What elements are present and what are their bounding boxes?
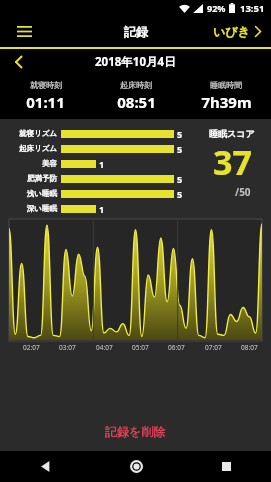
staticText: 01:11 xyxy=(26,92,65,112)
staticText: 92% xyxy=(207,2,226,14)
staticText: 肥満予防 xyxy=(27,174,57,183)
button[interactable]: Previous day xyxy=(6,50,30,74)
staticText: 07:07 xyxy=(205,343,222,352)
staticText: 深い睡眠 xyxy=(26,204,57,213)
staticText: 05:07 xyxy=(132,343,149,352)
staticText: 08:51 xyxy=(117,92,156,112)
staticText: 美容 xyxy=(42,159,57,168)
staticText: 睡眠スコア xyxy=(209,128,255,139)
staticText: 06:07 xyxy=(168,343,185,352)
staticText: 08:07 xyxy=(241,343,258,352)
staticText: 浅い睡眠 xyxy=(26,189,57,198)
staticText: 就寝時刻 xyxy=(30,80,62,90)
staticText: /50 xyxy=(235,185,251,199)
staticText: 睡眠時間 xyxy=(210,80,242,90)
staticText: 13:51 xyxy=(240,2,265,15)
button[interactable]: 就寝リズム xyxy=(5,126,193,141)
button[interactable]: 起床時刻 xyxy=(91,80,181,112)
staticText: 5 xyxy=(177,173,183,185)
staticText: 起床時刻 xyxy=(120,80,152,90)
button[interactable]: Back xyxy=(0,451,91,482)
staticText: 03:07 xyxy=(59,343,76,352)
button[interactable]: Recents xyxy=(181,451,271,482)
staticText: 起床リズム xyxy=(18,144,57,153)
button[interactable]: 記録を削除 xyxy=(0,411,271,451)
staticText: 02:07 xyxy=(23,343,40,352)
staticText: 記録 xyxy=(124,24,148,39)
staticText: 04:07 xyxy=(96,343,113,352)
staticText: 記録を削除 xyxy=(105,424,166,439)
button[interactable]: 肥満予防 xyxy=(5,171,193,186)
staticText: 5 xyxy=(177,143,183,155)
staticText: いびき xyxy=(213,24,250,39)
staticText: 1 xyxy=(99,158,105,170)
button[interactable]: 深い睡眠 xyxy=(5,201,193,216)
button[interactable]: Menu xyxy=(8,16,40,47)
staticText: 就寝リズム xyxy=(18,129,57,138)
button[interactable]: 睡眠時間 xyxy=(181,80,271,112)
button[interactable]: いびき xyxy=(211,20,263,43)
staticText: 37 xyxy=(213,139,252,185)
staticText: 2018年10月4日 xyxy=(95,54,176,70)
button[interactable]: 浅い睡眠 xyxy=(5,186,193,201)
staticText: 1 xyxy=(99,203,105,215)
button[interactable]: 美容 xyxy=(5,156,193,171)
staticText: 5 xyxy=(177,188,183,200)
button[interactable]: Sleep graph xyxy=(9,219,262,341)
button[interactable]: Home xyxy=(91,451,181,482)
button[interactable]: 起床リズム xyxy=(5,141,193,156)
button[interactable]: 就寝時刻 xyxy=(0,80,91,112)
staticText: 5 xyxy=(177,128,183,140)
staticText: 7h39m xyxy=(201,92,252,112)
